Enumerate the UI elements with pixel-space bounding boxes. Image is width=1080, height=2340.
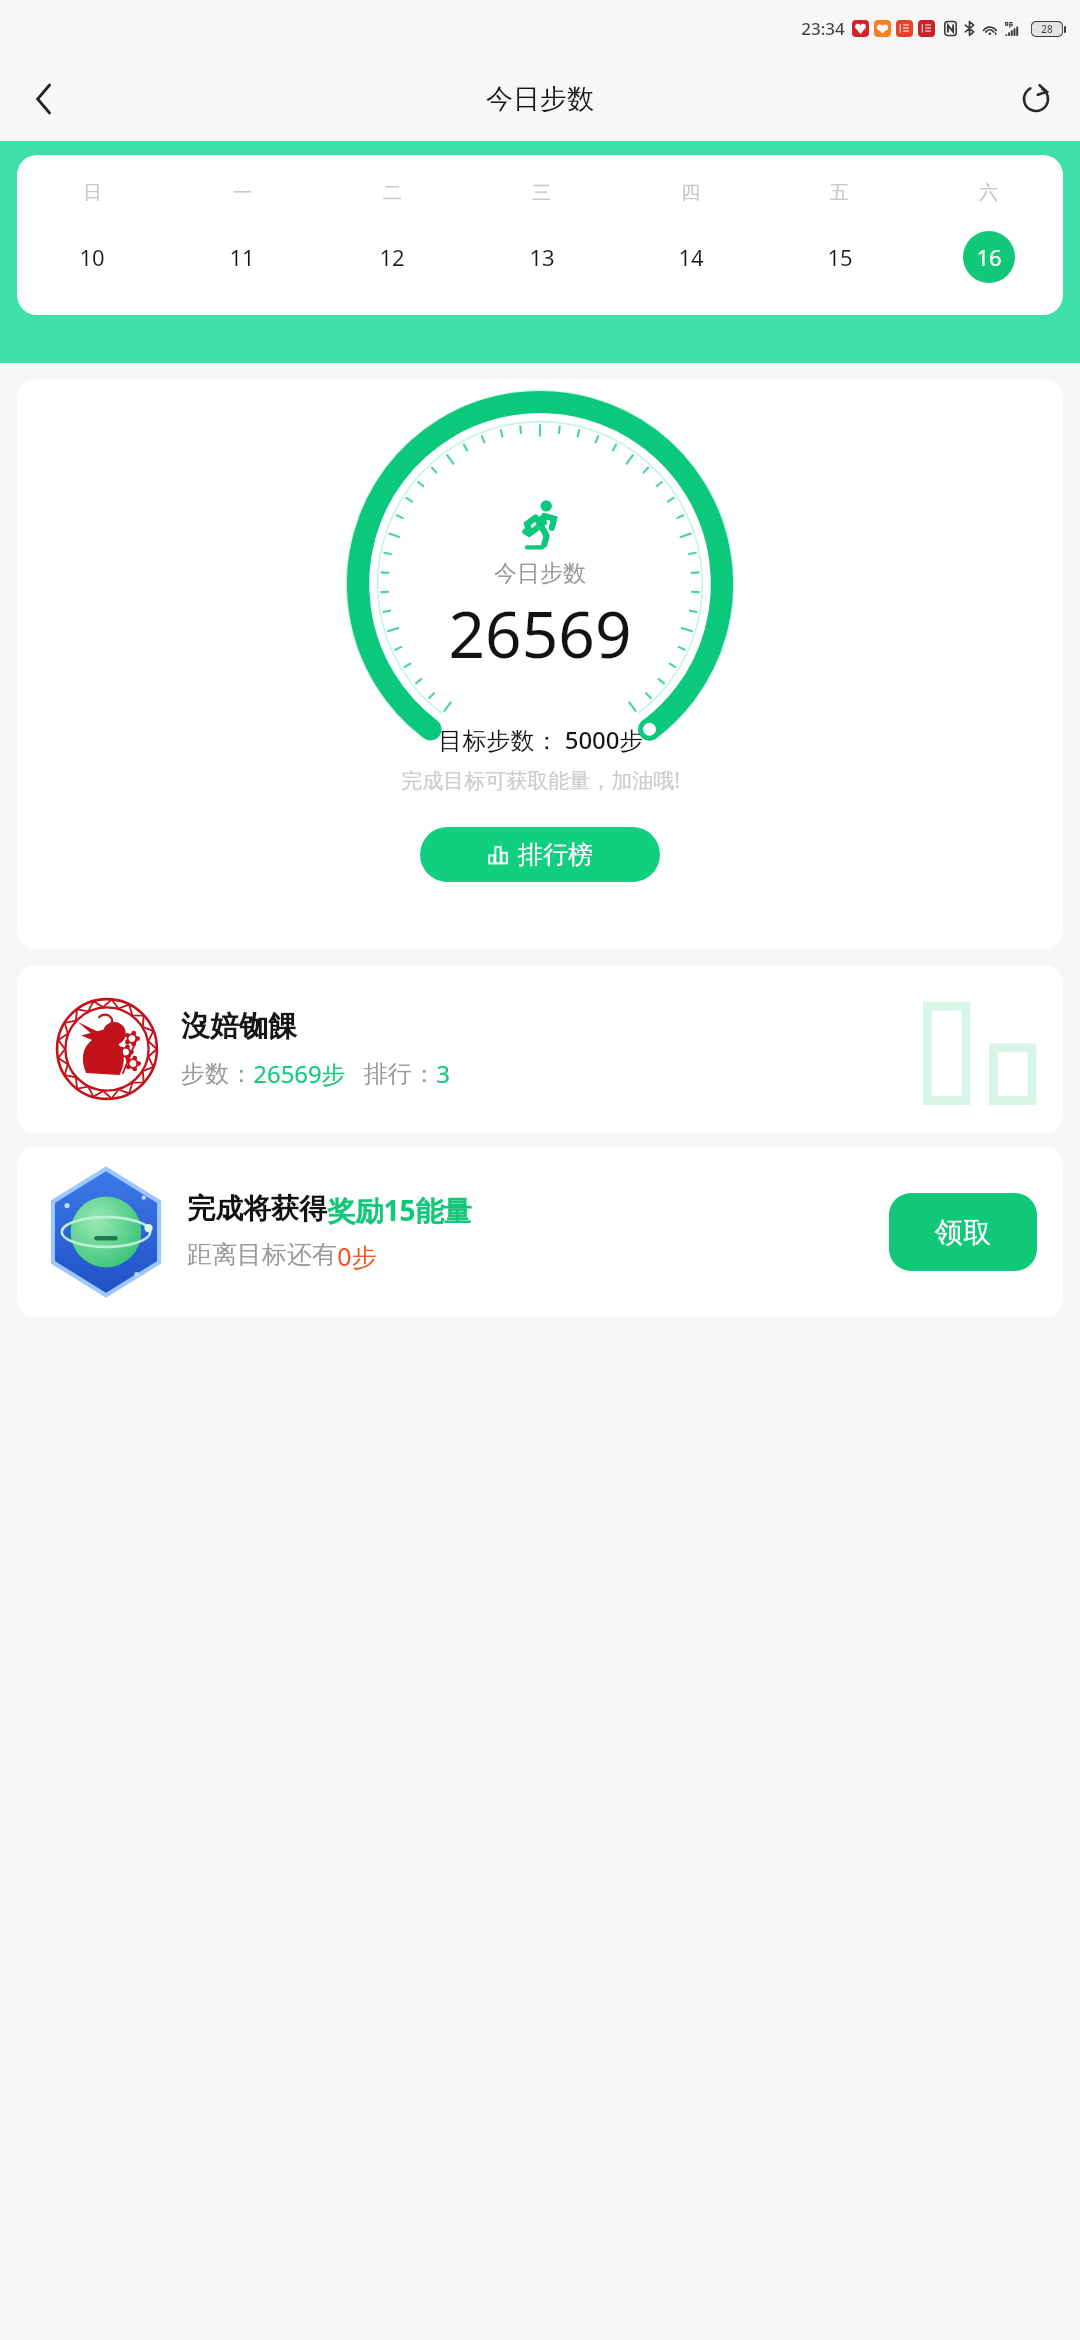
button[interactable]: 沒婄铷餜: [17, 965, 1063, 1133]
staticText: 五: [830, 181, 849, 205]
staticText: 三: [532, 181, 551, 205]
staticText: 26569: [448, 590, 632, 677]
staticText: 步数：: [181, 1059, 253, 1089]
staticText: 领取: [935, 1215, 991, 1250]
staticText: 排行榜: [518, 839, 593, 870]
button[interactable]: 13: [516, 231, 568, 283]
staticText: 四: [681, 181, 700, 205]
button[interactable]: 14: [665, 231, 717, 283]
staticText: 一: [233, 181, 252, 205]
staticText: 15: [827, 242, 853, 272]
staticText: 今日步数: [494, 559, 586, 588]
button[interactable]: 11: [216, 231, 268, 283]
staticText: 26569步: [253, 1057, 346, 1090]
staticText: 11: [229, 242, 255, 272]
staticText: 28: [1041, 22, 1053, 36]
staticText: 16: [976, 242, 1002, 272]
button[interactable]: 领取: [889, 1193, 1037, 1271]
staticText: 14: [678, 242, 704, 272]
staticText: 二: [383, 181, 402, 205]
staticText: 日: [83, 181, 102, 205]
button[interactable]: 12: [366, 231, 418, 283]
staticText: 0步: [337, 1239, 377, 1273]
staticText: 23:34: [801, 17, 845, 40]
staticText: 目标步数： 5000步: [438, 723, 644, 756]
button[interactable]: 16: [963, 231, 1015, 283]
staticText: 距离目标还有: [187, 1239, 337, 1270]
button[interactable]: 15: [814, 231, 866, 283]
staticText: 沒婄铷餜: [181, 1008, 297, 1045]
staticText: 今日步数: [486, 82, 594, 116]
button[interactable]: 10: [66, 231, 118, 283]
staticText: 六: [979, 181, 998, 205]
button[interactable]: Back: [16, 71, 72, 127]
staticText: 13: [529, 242, 555, 272]
staticText: 3: [436, 1057, 450, 1090]
button[interactable]: 排行榜: [420, 827, 660, 882]
staticText: 排行：: [364, 1059, 436, 1089]
button[interactable]: 日: [17, 155, 1063, 315]
staticText: 12: [379, 242, 405, 272]
button[interactable]: Share: [1008, 71, 1064, 127]
staticText: 完成目标可获取能量，加油哦!: [401, 766, 680, 795]
staticText: 10: [79, 242, 105, 272]
staticText: 奖励15能量: [327, 1191, 472, 1229]
staticText: 完成将获得: [187, 1191, 327, 1226]
